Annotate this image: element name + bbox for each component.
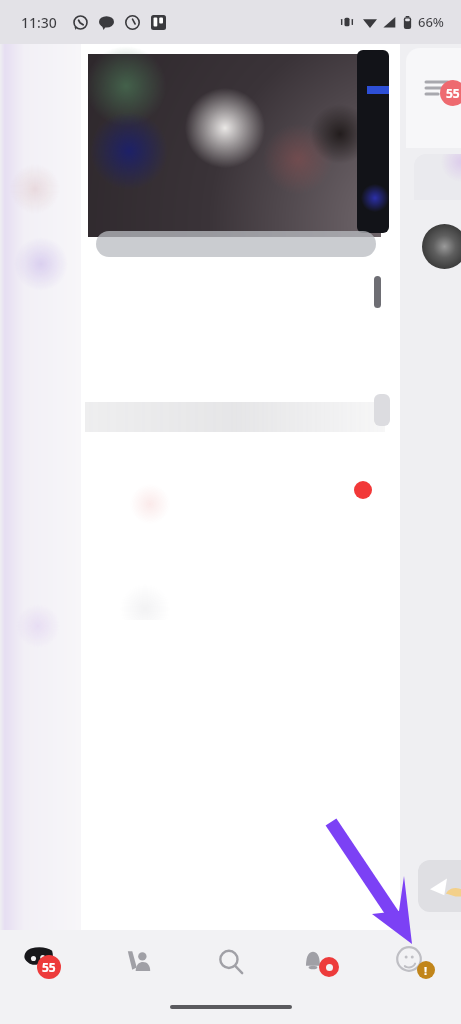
button[interactable]: Notifications (277, 930, 369, 994)
button[interactable]: Servers (0, 930, 93, 994)
staticText: 66% (418, 13, 444, 31)
button[interactable]: Search (185, 930, 277, 994)
staticText: 11:30 (21, 13, 57, 32)
staticText: ! (424, 963, 428, 978)
other: Profile photo (422, 224, 461, 269)
button[interactable]: Friends (93, 930, 185, 994)
staticText: 55 (42, 959, 56, 975)
button[interactable]: You (369, 930, 461, 994)
staticText: 55 (446, 85, 460, 101)
other: Menu (426, 80, 448, 96)
